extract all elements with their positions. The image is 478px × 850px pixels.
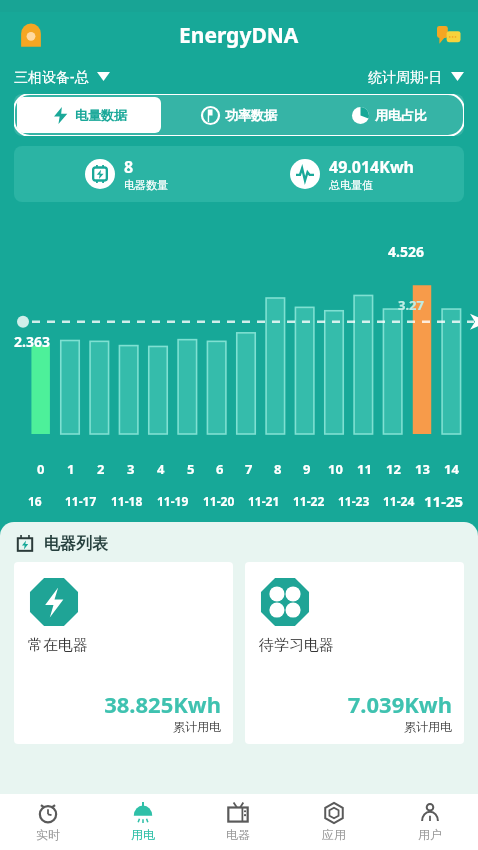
staticText: 4	[157, 460, 165, 478]
button[interactable]: 应用	[286, 794, 382, 850]
staticText: 2	[97, 460, 105, 478]
staticText: 统计周期-日	[368, 67, 443, 86]
button[interactable]: 49.014Kwh	[239, 146, 464, 202]
staticText: 11	[357, 460, 372, 478]
staticText: 电器数量	[124, 178, 168, 192]
staticText: 11-20	[203, 493, 235, 509]
staticText: 11-25	[424, 491, 464, 511]
staticText: 用电占比	[375, 107, 427, 123]
staticText: 3	[127, 460, 135, 478]
button[interactable]: 三相设备-总	[14, 63, 110, 90]
button[interactable]: 常在电器	[14, 562, 233, 744]
staticText: 10	[328, 460, 343, 478]
staticText: 12	[386, 460, 401, 478]
staticText: 3.27	[398, 296, 424, 314]
staticText: 16	[28, 493, 42, 509]
staticText: 实时	[36, 827, 60, 842]
staticText: 电量数据	[75, 107, 127, 123]
staticText: 8	[274, 460, 282, 478]
staticText: 1	[67, 460, 75, 478]
staticText: 38.825Kwh	[28, 689, 221, 719]
staticText: 11-21	[248, 493, 280, 509]
staticText: 11-18	[111, 493, 143, 509]
button[interactable]: 用户	[382, 794, 478, 850]
staticText: 11-19	[157, 493, 189, 509]
staticText: 6	[216, 460, 224, 478]
staticText: 常在电器	[28, 636, 88, 655]
staticText: 用户	[418, 827, 442, 842]
staticText: 8	[124, 156, 134, 178]
staticText: 11-17	[65, 493, 97, 509]
button[interactable]: 待学习电器	[245, 562, 464, 744]
staticText: 13	[415, 460, 430, 478]
button[interactable]: 用电	[95, 794, 190, 850]
staticText: 14	[444, 460, 459, 478]
button[interactable]: 电量数据	[17, 97, 161, 133]
staticText: 7.039Kwh	[259, 689, 452, 719]
button[interactable]: 用电占比	[317, 97, 461, 133]
button[interactable]: 实时	[0, 794, 95, 850]
staticText: 2.363	[14, 332, 50, 351]
staticText: 7	[245, 460, 253, 478]
staticText: 5	[187, 460, 195, 478]
staticText: 电器列表	[44, 534, 108, 554]
staticText: 总电量值	[329, 178, 373, 192]
button[interactable]: Messages	[432, 18, 466, 52]
staticText: 应用	[322, 827, 346, 842]
button[interactable]: 功率数据	[167, 97, 311, 133]
staticText: 累计用电	[28, 719, 221, 734]
staticText: 0	[37, 460, 45, 478]
staticText: 11-22	[293, 493, 325, 509]
staticText: 11-23	[338, 493, 370, 509]
staticText: EnergyDNA	[179, 21, 299, 50]
staticText: 待学习电器	[259, 636, 334, 655]
staticText: 4.526	[388, 242, 424, 261]
button[interactable]: 8	[14, 146, 239, 202]
staticText: 功率数据	[225, 107, 277, 123]
staticText: 9	[303, 460, 311, 478]
button[interactable]: 统计周期-日	[368, 63, 464, 90]
staticText: 电器	[226, 827, 250, 842]
staticText: 用电	[131, 827, 155, 842]
staticText: 49.014Kwh	[329, 156, 414, 178]
staticText: 累计用电	[259, 719, 452, 734]
button[interactable]: Device meter	[14, 18, 48, 52]
button[interactable]: 电器	[190, 794, 286, 850]
staticText: 三相设备-总	[14, 67, 89, 86]
staticText: 11-24	[383, 493, 415, 509]
